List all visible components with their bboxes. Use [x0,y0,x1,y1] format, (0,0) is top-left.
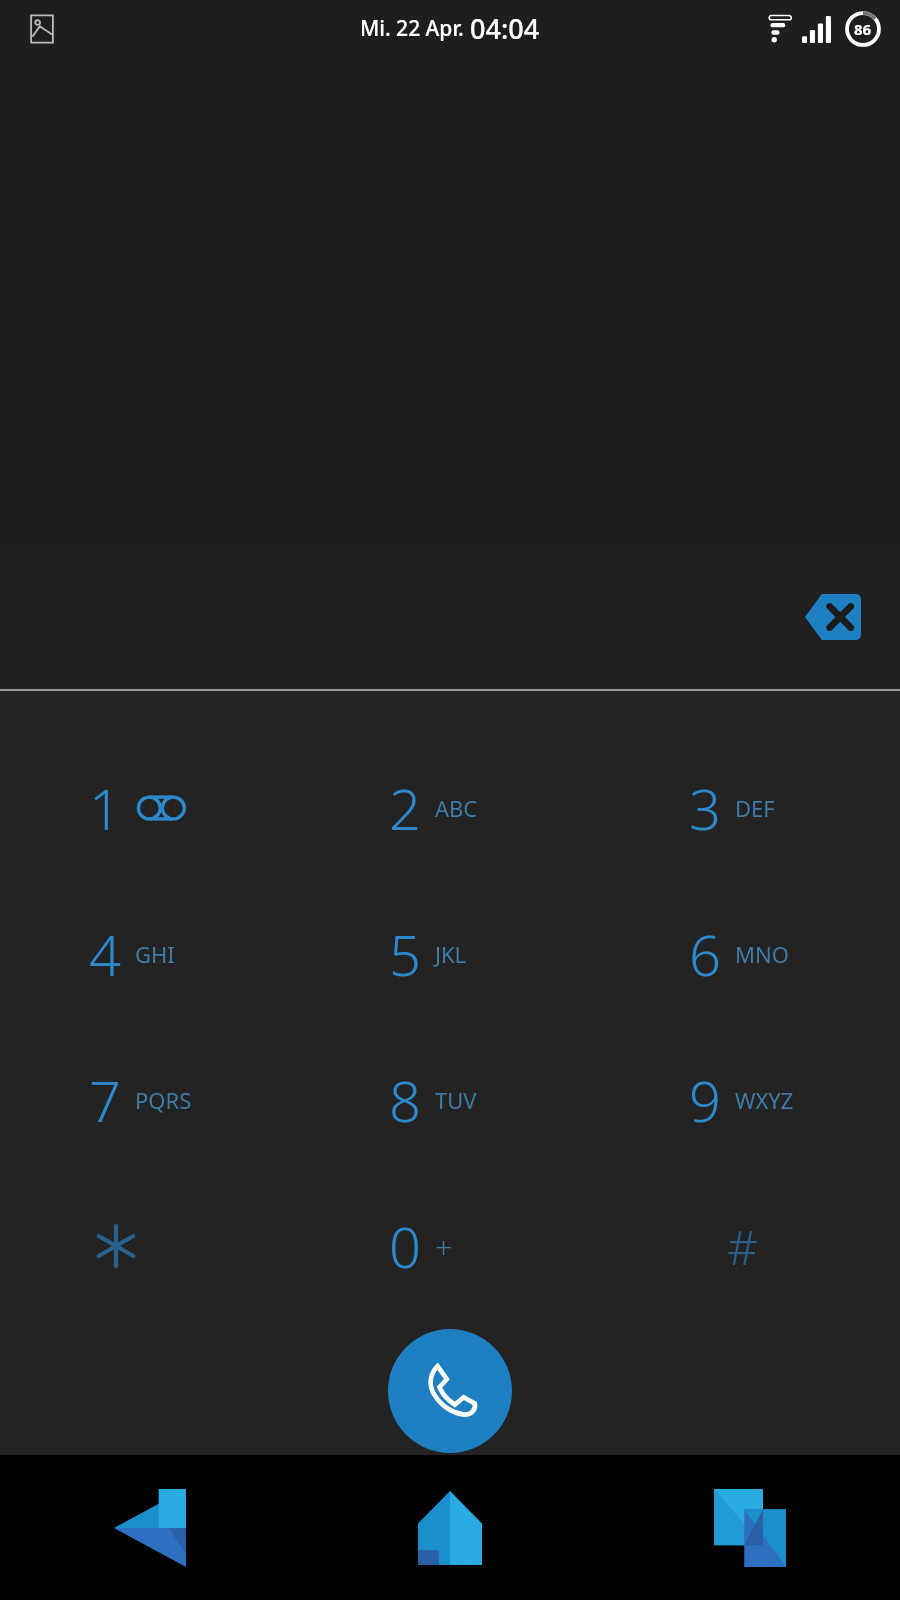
staticText: JKL [435,939,467,969]
button[interactable]: 5 [300,881,600,1027]
staticText: 8 [389,1062,421,1138]
staticText: 7 [89,1062,121,1138]
staticText: 3 [689,770,721,846]
staticText: TUV [435,1085,477,1115]
staticText: 9 [689,1062,721,1138]
staticText: Mi. 22 Apr. [360,14,464,43]
staticText: 5 [389,916,421,992]
button[interactable]: Screenshot [22,9,62,49]
staticText: 1 [89,770,121,846]
staticText: 86 [854,19,872,39]
staticText: WXYZ [735,1085,794,1115]
button[interactable]: 4 [0,881,300,1027]
button[interactable]: 7 [0,1027,300,1173]
staticText: PQRS [135,1085,192,1115]
staticText: 04:04 [470,10,540,47]
button[interactable]: 1 [0,735,300,881]
staticText: ABC [435,793,478,823]
button[interactable]: 2 [300,735,600,881]
staticText: GHI [135,939,175,969]
staticText: # [727,1214,759,1279]
button[interactable]: 9 [600,1027,900,1173]
button[interactable]: 3 [600,735,900,881]
staticText: 0 [389,1208,421,1284]
staticText: 2 [389,770,421,846]
staticText: + [435,1226,453,1267]
button[interactable]: Back [0,1455,300,1600]
button[interactable]: Call [388,1329,512,1453]
staticText: 4 [89,916,121,992]
button[interactable]: Home [300,1455,600,1600]
button[interactable]: 0 [300,1173,600,1319]
staticText: MNO [735,939,789,969]
staticText: 6 [689,916,721,992]
button[interactable]: Delete [799,587,867,647]
button[interactable]: Recents [600,1455,900,1600]
staticText: DEF [735,793,775,823]
button[interactable]: 8 [300,1027,600,1173]
button[interactable]: Star [0,1173,300,1319]
button[interactable]: Pound [600,1173,900,1319]
button[interactable]: 6 [600,881,900,1027]
